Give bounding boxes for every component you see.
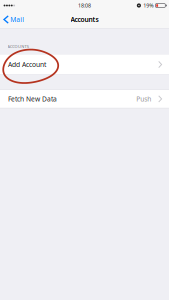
button[interactable]: Add Account	[0, 54, 169, 74]
staticText: Mail	[10, 15, 24, 24]
staticText: Accounts	[70, 15, 98, 24]
staticText: Fetch New Data	[8, 94, 57, 103]
button[interactable]: Mail	[0, 11, 28, 28]
staticText: Add Account	[8, 60, 46, 69]
staticText: ACCOUNTS	[8, 44, 29, 49]
staticText: Push	[136, 94, 151, 103]
staticText: 19%	[143, 2, 153, 9]
staticText: 18:08	[78, 2, 91, 9]
button[interactable]: Fetch New Data	[0, 90, 169, 108]
